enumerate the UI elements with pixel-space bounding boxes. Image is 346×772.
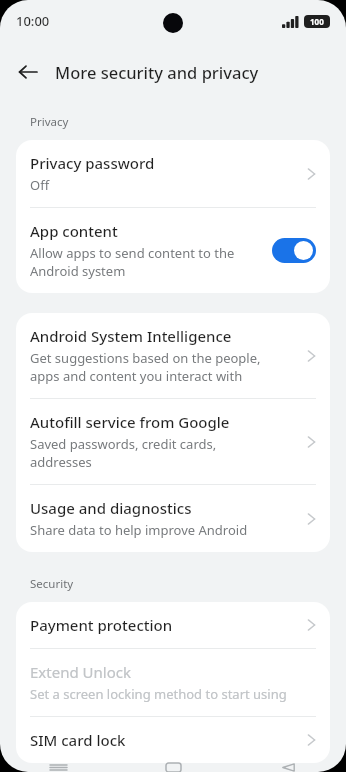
staticText: Saved passwords, credit cards, addresses [30, 435, 217, 471]
staticText: Share data to help improve Android [30, 521, 248, 539]
button[interactable]: Android System Intelligence [16, 313, 330, 398]
button[interactable]: Back [231, 763, 346, 772]
staticText: Android System Intelligence [30, 326, 232, 346]
staticText: Payment protection [30, 615, 173, 635]
staticText: App content [30, 221, 118, 241]
button[interactable]: Usage and diagnostics [16, 485, 330, 552]
staticText: Off [30, 176, 50, 194]
staticText: Privacy [30, 114, 69, 130]
button[interactable]: Back [10, 54, 46, 90]
staticText: Autofill service from Google [30, 412, 230, 432]
staticText: Privacy password [30, 153, 155, 173]
staticText: Get suggestions based on the people, app… [30, 349, 261, 385]
button[interactable]: App content, on [272, 238, 316, 263]
button[interactable]: Extend Unlock [16, 649, 330, 716]
button[interactable]: Privacy password [16, 140, 330, 207]
button[interactable]: Autofill service from Google [16, 399, 330, 484]
button[interactable]: SIM card lock [16, 717, 330, 763]
staticText: Security [30, 576, 74, 592]
staticText: SIM card lock [30, 730, 126, 750]
staticText: Set a screen locking method to start usi… [30, 685, 287, 703]
button[interactable]: Home [116, 763, 231, 772]
staticText: 100 [310, 16, 324, 27]
staticText: Usage and diagnostics [30, 498, 192, 518]
staticText: 10:00 [16, 12, 50, 30]
staticText: Allow apps to send content to the Androi… [30, 244, 235, 280]
staticText: More security and privacy [55, 61, 259, 83]
button[interactable]: App content [16, 208, 330, 293]
button[interactable]: Recent apps [0, 763, 116, 772]
staticText: Extend Unlock [30, 662, 131, 682]
button[interactable]: Payment protection [16, 602, 330, 648]
